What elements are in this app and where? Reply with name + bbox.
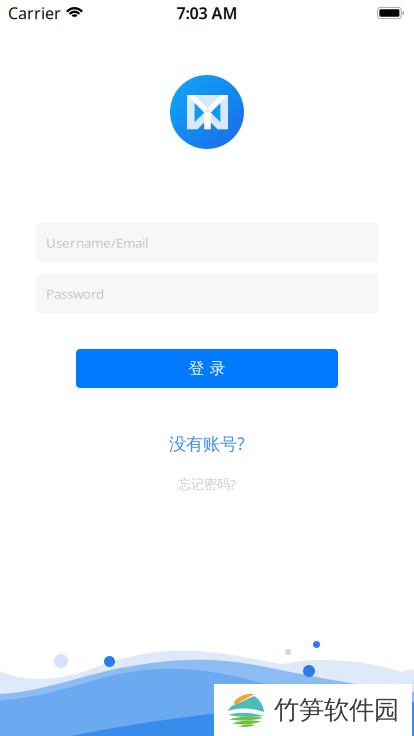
- staticText: Carrier: [8, 2, 61, 24]
- staticText: Username/Email: [46, 234, 148, 251]
- staticText: Password: [46, 285, 104, 302]
- button[interactable]: 没有账号?: [169, 432, 245, 455]
- staticText: 登 录: [188, 359, 225, 378]
- staticText: 7:03 AM: [176, 2, 237, 24]
- staticText: 忘记密码?: [178, 475, 236, 493]
- staticText: 没有账号?: [169, 432, 245, 455]
- staticText: 竹笋软件园: [274, 694, 399, 725]
- button[interactable]: 登 录: [76, 349, 338, 388]
- button[interactable]: 忘记密码?: [178, 475, 236, 493]
